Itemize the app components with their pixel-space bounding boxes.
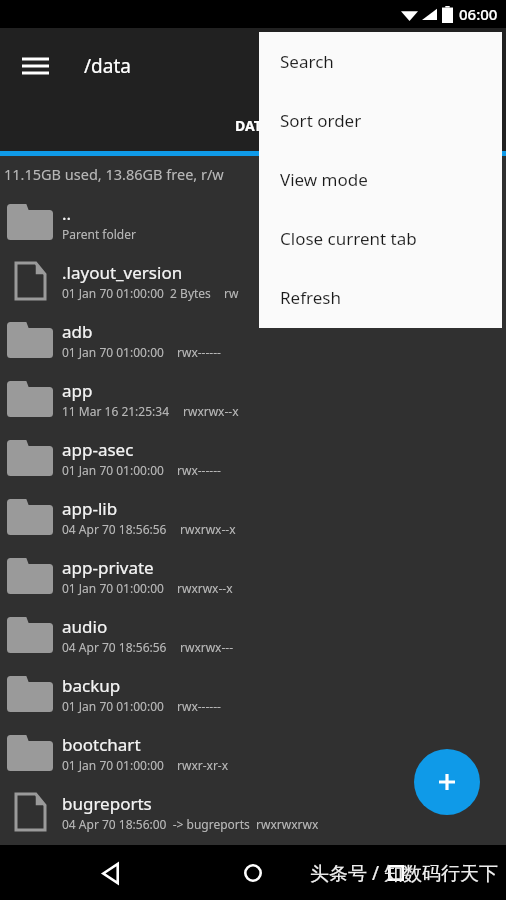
staticText: rwx------ xyxy=(177,698,221,714)
staticText: rwx------ xyxy=(177,344,221,360)
staticText: rwxrwx--x xyxy=(180,521,236,537)
staticText: audio xyxy=(62,615,108,638)
staticText: Refresh xyxy=(280,286,341,309)
staticText: app-lib xyxy=(62,497,118,520)
button[interactable]: bootchart xyxy=(0,723,506,782)
staticText: 06:00 xyxy=(459,4,498,24)
button[interactable]: View mode xyxy=(259,150,502,209)
button[interactable]: Refresh xyxy=(259,268,502,327)
staticText: rwxr-xr-x xyxy=(177,757,229,773)
button[interactable]: app xyxy=(0,369,506,428)
staticText: rwxrwx--- xyxy=(180,639,234,655)
button[interactable]: Back xyxy=(85,848,135,898)
staticText: 01 Jan 70 01:00:00 xyxy=(62,580,164,596)
staticText: rw xyxy=(224,285,239,301)
staticText: app-private xyxy=(62,556,154,579)
button[interactable]: .. xyxy=(0,192,506,251)
button[interactable]: adb xyxy=(0,310,506,369)
staticText: bugreports xyxy=(62,792,152,815)
button[interactable]: .layout_version xyxy=(0,251,506,310)
staticText: rwxrwx--x xyxy=(183,403,239,419)
staticText: View mode xyxy=(280,168,368,191)
staticText: Search xyxy=(280,50,334,73)
button[interactable]: app-lib xyxy=(0,487,506,546)
button[interactable]: Search xyxy=(259,32,502,91)
staticText: 04 Apr 70 18:56:56 xyxy=(62,521,167,537)
staticText: adb xyxy=(62,320,93,343)
button[interactable]: Sort order xyxy=(259,91,502,150)
staticText: rwx------ xyxy=(177,462,221,478)
staticText: bootchart xyxy=(62,733,141,756)
button[interactable]: app-private xyxy=(0,546,506,605)
staticText: 头条号 / 知数码行天下 xyxy=(310,860,498,886)
staticText: 01 Jan 70 01:00:00 2 Bytes xyxy=(62,285,211,301)
staticText: 01 Jan 70 01:00:00 xyxy=(62,757,164,773)
staticText: app xyxy=(62,379,93,402)
staticText: rwxrwx--x xyxy=(177,580,233,596)
button[interactable]: Close current tab xyxy=(259,209,502,268)
button[interactable]: audio xyxy=(0,605,506,664)
button[interactable]: bugreports xyxy=(0,782,506,841)
staticText: app-asec xyxy=(62,438,134,461)
staticText: 11 Mar 16 21:25:34 xyxy=(62,403,170,419)
button[interactable]: Open navigation drawer xyxy=(10,41,60,91)
staticText: .. xyxy=(62,202,72,225)
button[interactable]: Recent apps xyxy=(371,848,421,898)
button[interactable]: Add xyxy=(414,749,480,815)
staticText: 11.15GB used, 13.86GB free, r/w xyxy=(4,164,224,184)
staticText: .layout_version xyxy=(62,261,183,284)
staticText: 04 Apr 70 18:56:00 -> bugreports rwxrwxr… xyxy=(62,816,319,832)
staticText: Sort order xyxy=(280,109,362,132)
staticText: backup xyxy=(62,674,121,697)
button[interactable]: backup xyxy=(0,664,506,723)
staticText: 01 Jan 70 01:00:00 xyxy=(62,462,164,478)
staticText: 01 Jan 70 01:00:00 xyxy=(62,698,164,714)
staticText: 01 Jan 70 01:00:00 xyxy=(62,344,164,360)
staticText: /data xyxy=(84,53,131,79)
staticText: Parent folder xyxy=(62,226,136,242)
staticText: DATA xyxy=(235,116,271,135)
button[interactable]: DATA xyxy=(0,104,506,151)
button[interactable]: Home xyxy=(228,848,278,898)
staticText: 04 Apr 70 18:56:56 xyxy=(62,639,167,655)
staticText: Close current tab xyxy=(280,227,417,250)
button[interactable]: app-asec xyxy=(0,428,506,487)
